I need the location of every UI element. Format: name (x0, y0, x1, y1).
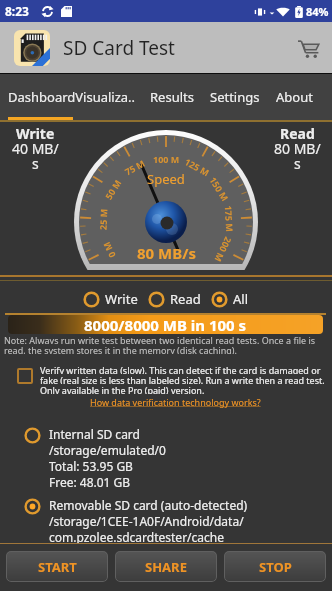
staticText: DashboardVisualiza.. (8, 88, 136, 106)
staticText: Removable SD card (auto-detected) (49, 497, 248, 513)
staticText: About (276, 88, 313, 106)
staticText: Write (16, 124, 55, 139)
staticText: 50 M (102, 176, 124, 201)
button[interactable]: Write (83, 290, 138, 308)
button[interactable]: Results (142, 88, 202, 106)
button[interactable]: All (211, 290, 249, 308)
staticText: s (294, 154, 301, 169)
staticText: Verify written data (slow). This can det… (40, 364, 321, 374)
staticText: Free: 48.01 GB (49, 474, 131, 490)
staticText: 0 M (100, 240, 118, 260)
staticText: Internal SD card (49, 426, 140, 442)
button[interactable]: Shop (286, 26, 330, 70)
staticText: 40 MB/ (12, 139, 59, 154)
staticText: SD Card Test (63, 35, 175, 61)
staticText: START (38, 558, 77, 576)
button[interactable]: SHARE (115, 551, 217, 582)
button[interactable]: Settings (202, 88, 268, 106)
staticText: /storage/1CEE-1A0F/Android/data/ (49, 513, 244, 529)
staticText: SHARE (145, 558, 187, 576)
button[interactable]: DashboardVisualiza.. (0, 88, 142, 106)
staticText: 80 MB/s (137, 243, 196, 263)
staticText: Speed (147, 170, 185, 188)
staticText: read, the system stores it in the memory… (4, 344, 237, 354)
button[interactable] (8, 315, 323, 334)
staticText: 150 M (207, 174, 232, 204)
staticText: Write (105, 290, 138, 308)
staticText: 175 M (223, 205, 236, 233)
staticText: STOP (259, 558, 292, 576)
button[interactable]: Removable SD card (auto-detected) (0, 497, 332, 545)
staticText: 84% (306, 4, 329, 19)
button[interactable]: About (268, 88, 321, 106)
staticText: 8000/8000 MB in 100 s (84, 315, 247, 334)
staticText: fake (real size is less than labeled siz… (40, 374, 325, 384)
button[interactable]: Internal SD card (0, 426, 332, 490)
staticText: Results (150, 88, 194, 106)
staticText: Total: 53.95 GB (49, 458, 133, 474)
staticText: s (32, 154, 39, 169)
staticText: 200 M (212, 235, 235, 265)
button[interactable]: How data verification technology works? (90, 396, 261, 408)
button[interactable]: START (6, 551, 108, 582)
staticText: 80 MB/ (274, 139, 321, 154)
staticText: Note: Always run write test between two … (4, 334, 316, 344)
button[interactable]: Verify written data (slow). This can det… (0, 364, 332, 408)
staticText: 75 M (122, 156, 148, 178)
staticText: Read (170, 290, 201, 308)
staticText: Read (280, 124, 315, 139)
staticText: 100 M (153, 153, 180, 165)
button[interactable]: Read (148, 290, 201, 308)
staticText: Only available in the Pro (paid) version… (40, 384, 205, 394)
staticText: Settings (210, 88, 260, 106)
button[interactable]: STOP (224, 551, 326, 582)
staticText: com.pzolee.sdcardtester/cache (49, 529, 224, 545)
staticText: All (233, 290, 249, 308)
staticText: 125 M (183, 155, 212, 179)
staticText: 8:23 (5, 3, 29, 19)
staticText: 25 M (96, 208, 109, 230)
staticText: /storage/emulated/0 (49, 442, 166, 458)
